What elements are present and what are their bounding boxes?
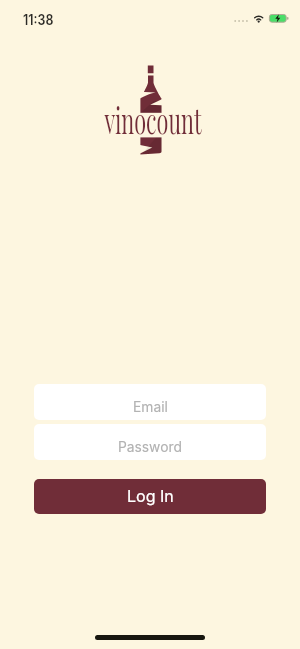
button[interactable]: Email <box>34 384 266 420</box>
staticText: vinocount <box>104 95 202 143</box>
button[interactable]: Password <box>34 424 266 460</box>
staticText: Email <box>133 399 168 416</box>
staticText: Log In <box>127 486 174 505</box>
staticText: Password <box>118 439 182 456</box>
button[interactable]: Log In <box>34 479 266 514</box>
staticText: 11:38 <box>23 11 54 28</box>
